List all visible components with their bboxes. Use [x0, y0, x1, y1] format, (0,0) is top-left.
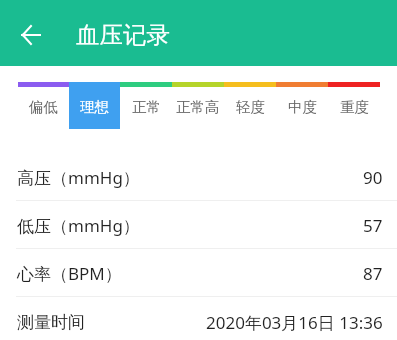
staticText: 中度 [288, 98, 317, 116]
staticText: 高压（mmHg） [17, 166, 140, 189]
button[interactable]: 正常 [120, 87, 172, 129]
button[interactable]: 低压（mmHg） [0, 201, 397, 249]
button[interactable]: 测量时间 [0, 297, 397, 340]
button[interactable]: 高压（mmHg） [0, 153, 397, 201]
staticText: 57 [363, 214, 383, 237]
staticText: 2020年03月16日 13:36 [206, 311, 383, 334]
staticText: 偏低 [29, 98, 58, 116]
staticText: 90 [363, 166, 383, 189]
button[interactable]: 轻度 [224, 87, 276, 129]
staticText: 轻度 [236, 98, 265, 116]
staticText: 正常 [132, 98, 161, 116]
button[interactable]: 正常高 [172, 87, 224, 129]
button[interactable]: 理想 [69, 87, 120, 129]
button[interactable]: Back [14, 18, 47, 51]
staticText: 低压（mmHg） [17, 214, 140, 237]
button[interactable]: 偏低 [18, 87, 69, 129]
button[interactable]: 重度 [328, 87, 380, 129]
staticText: 87 [363, 262, 383, 285]
button[interactable]: 心率（BPM） [0, 249, 397, 297]
staticText: 心率（BPM） [17, 262, 122, 285]
button[interactable]: 中度 [276, 87, 328, 129]
staticText: 重度 [340, 98, 369, 116]
staticText: 血压记录 [76, 20, 170, 50]
staticText: 测量时间 [17, 312, 85, 333]
staticText: 正常高 [176, 98, 220, 116]
staticText: 理想 [80, 98, 109, 116]
